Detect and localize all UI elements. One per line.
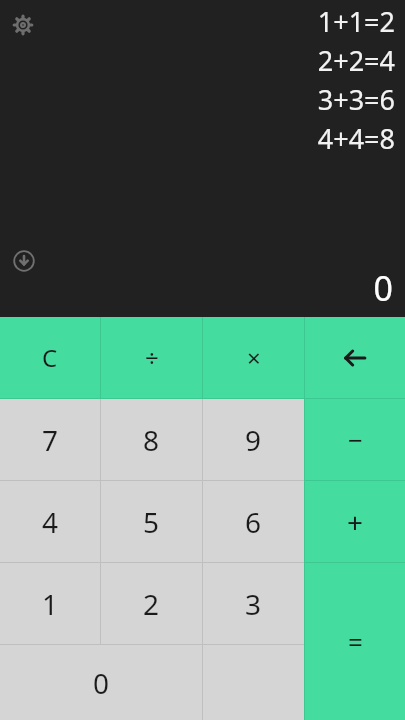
- staticText: =: [348, 624, 363, 659]
- staticText: 9: [245, 421, 262, 459]
- staticText: 3: [245, 585, 262, 623]
- button[interactable]: 8: [101, 399, 202, 480]
- staticText: 8: [143, 421, 160, 459]
- staticText: 1+1=2: [317, 3, 395, 40]
- button[interactable]: 2: [101, 563, 202, 644]
- staticText: ×: [247, 341, 261, 374]
- button[interactable]: 7: [0, 399, 100, 480]
- button[interactable]: 3: [203, 563, 304, 644]
- staticText: 5: [143, 503, 160, 541]
- staticText: C: [42, 341, 58, 374]
- button[interactable]: Download: [10, 247, 38, 275]
- staticText: 2: [143, 585, 160, 623]
- button[interactable]: +: [305, 481, 405, 562]
- staticText: 3+3=6: [317, 81, 395, 118]
- button[interactable]: ×: [203, 317, 304, 398]
- button[interactable]: 0: [0, 645, 202, 720]
- staticText: +: [347, 503, 364, 541]
- button[interactable]: 5: [101, 481, 202, 562]
- staticText: 6: [245, 503, 262, 541]
- button[interactable]: Settings: [10, 12, 36, 38]
- staticText: 4+4=8: [317, 120, 395, 157]
- staticText: 4: [42, 503, 59, 541]
- button[interactable]: C: [0, 317, 100, 398]
- staticText: 0: [373, 265, 393, 311]
- button[interactable]: ÷: [101, 317, 202, 398]
- button[interactable]: Backspace: [305, 317, 405, 398]
- staticText: −: [348, 422, 363, 457]
- button[interactable]: 1: [0, 563, 100, 644]
- button[interactable]: 4: [0, 481, 100, 562]
- staticText: 1: [42, 585, 59, 623]
- staticText: ÷: [145, 341, 159, 374]
- staticText: 0: [93, 664, 110, 702]
- button[interactable]: =: [305, 563, 405, 720]
- staticText: 2+2=4: [317, 42, 395, 79]
- button[interactable]: 6: [203, 481, 304, 562]
- staticText: 7: [42, 421, 59, 459]
- button[interactable]: −: [305, 399, 405, 480]
- button[interactable]: 9: [203, 399, 304, 480]
